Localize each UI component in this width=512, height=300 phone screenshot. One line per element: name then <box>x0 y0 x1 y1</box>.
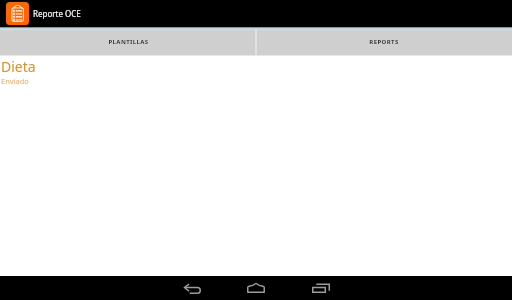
staticText: REPORTS <box>369 38 399 46</box>
button[interactable]: Recent apps <box>305 276 337 300</box>
button[interactable]: Home <box>240 276 272 300</box>
staticText: Reporte OCE <box>33 8 81 19</box>
button[interactable]: PLANTILLAS <box>0 30 256 56</box>
button[interactable]: Dieta <box>0 57 512 86</box>
button[interactable]: Reporte OCE app icon <box>6 2 29 25</box>
staticText: Enviado <box>1 76 29 86</box>
staticText: Dieta <box>1 57 36 76</box>
staticText: PLANTILLAS <box>108 38 149 46</box>
button[interactable]: Back <box>176 276 208 300</box>
button[interactable]: REPORTS <box>256 30 512 56</box>
